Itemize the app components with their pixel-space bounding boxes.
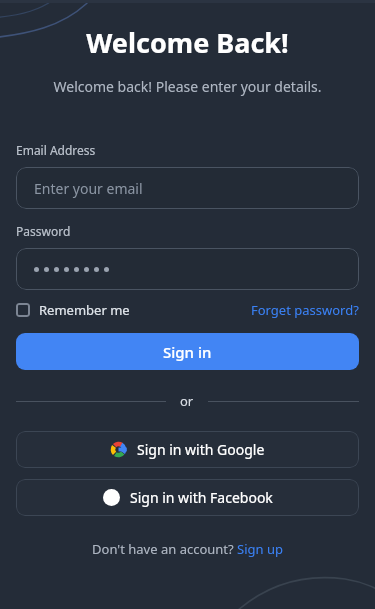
button[interactable] [16,248,359,290]
staticText: Welcome Back! [16,24,359,61]
staticText: Forget password? [251,301,359,319]
button[interactable]: Sign in with Facebook [16,479,359,516]
staticText: Don't have an account? Sign up [92,540,283,558]
staticText: or [180,392,194,410]
staticText: Sign in [163,342,212,362]
staticText: Password [16,223,71,239]
button[interactable]: Sign in [16,333,359,370]
staticText: Email Address [16,142,96,158]
button[interactable]: Don't have an account? Sign up [16,540,359,558]
staticText: Remember me [39,301,130,319]
button[interactable]: Enter your email [16,167,359,209]
staticText: Sign in with Facebook [130,488,273,507]
button[interactable]: Sign in with Google [16,431,359,468]
button[interactable]: Forget password? [251,301,359,319]
staticText: Sign in with Google [137,440,265,459]
staticText: Welcome back! Please enter your details. [16,77,359,96]
staticText: Enter your email [34,179,143,198]
button[interactable]: Remember me [16,301,130,319]
